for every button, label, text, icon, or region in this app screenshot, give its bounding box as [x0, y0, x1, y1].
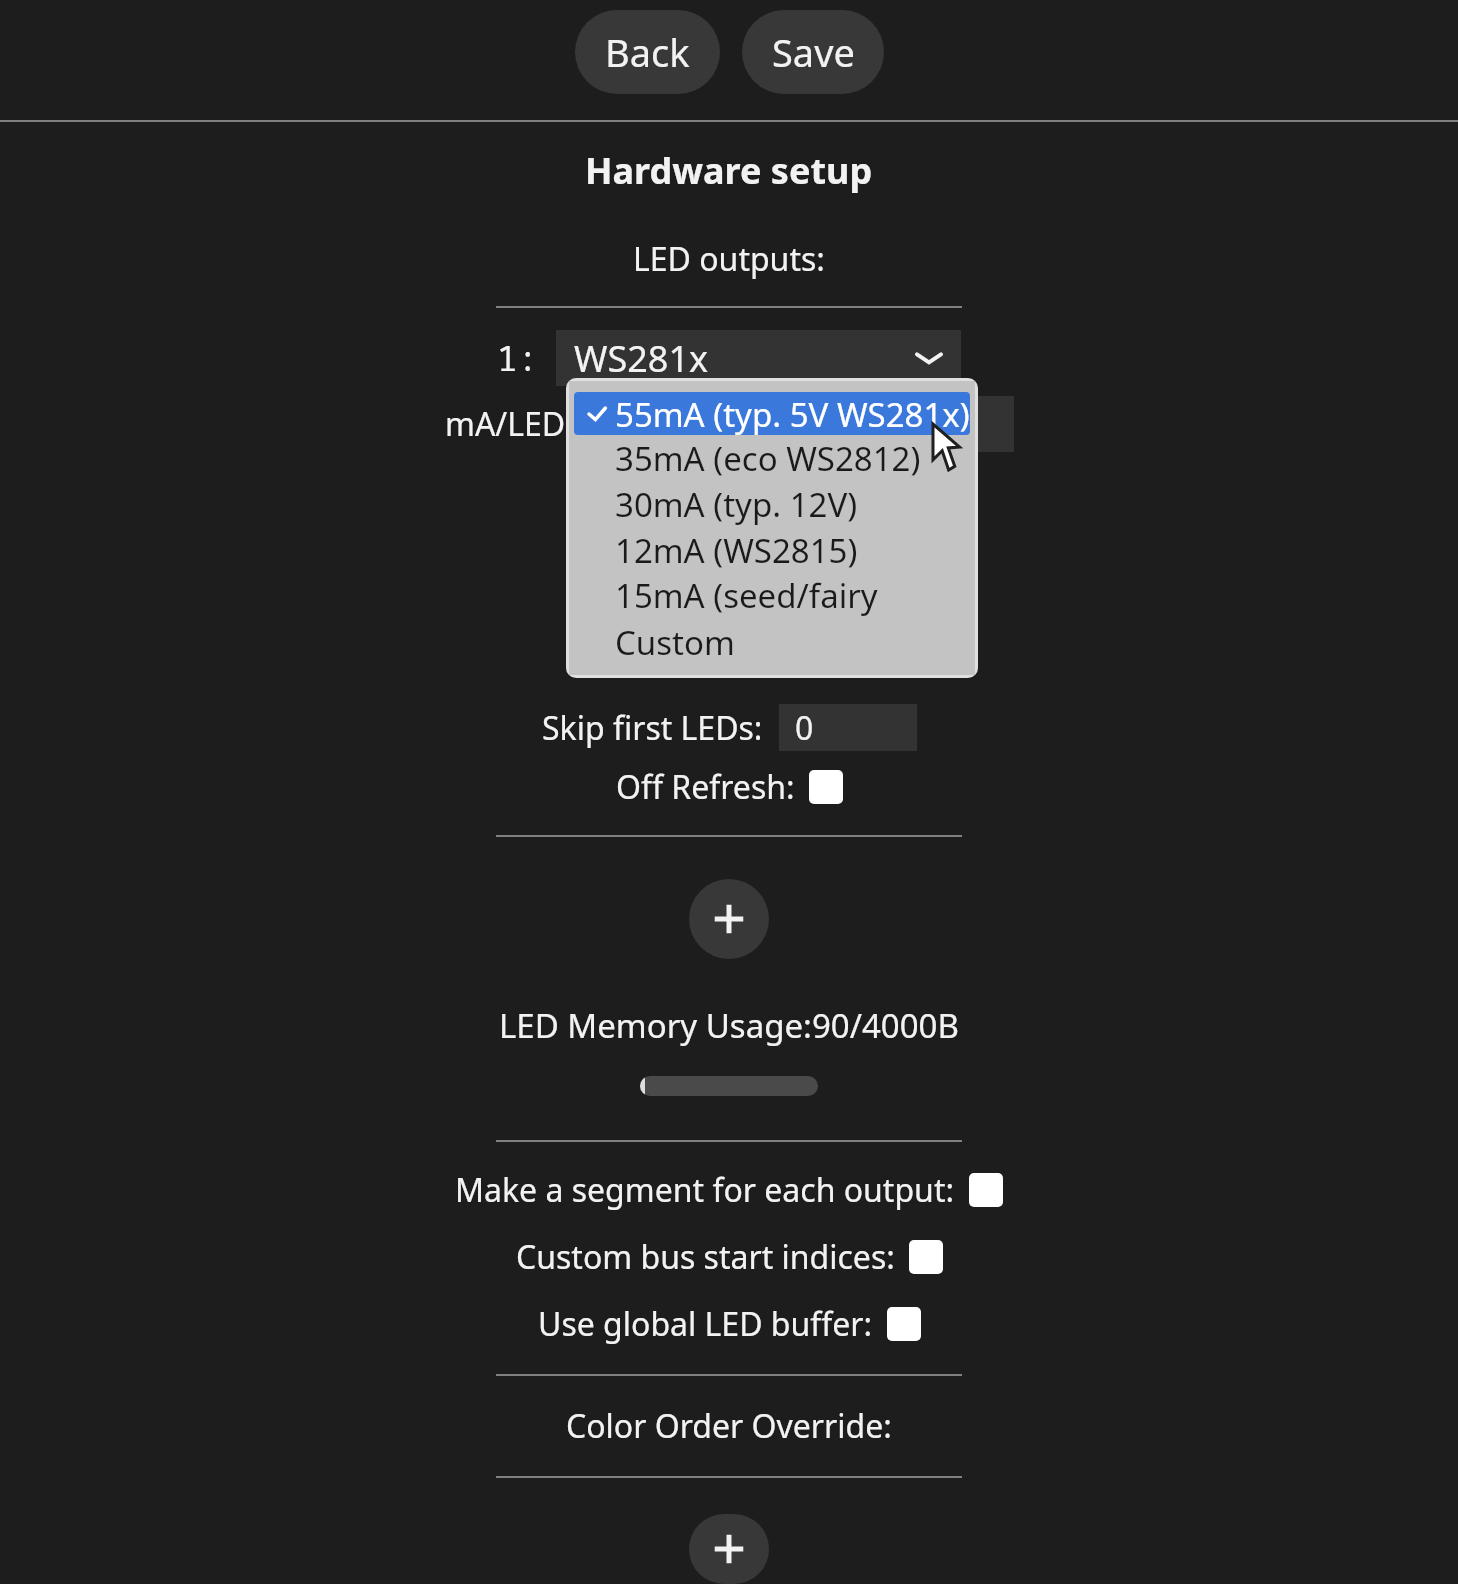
staticText: 35mA (eco WS2812) [615, 436, 921, 481]
button[interactable]: Add [689, 1514, 769, 1584]
staticText: 55mA (typ. 5V WS281x) [615, 392, 970, 435]
staticText: LED outputs: [633, 237, 825, 281]
staticText: Custom [615, 620, 735, 665]
button[interactable]: 35mA (eco WS2812) [569, 435, 975, 481]
button[interactable]: Toggle [809, 770, 843, 804]
staticText: Hardware setup [585, 146, 873, 195]
button[interactable]: 12mA (WS2815) [569, 527, 975, 573]
button[interactable]: Toggle [969, 1173, 1003, 1207]
staticText: Use global LED buffer: [538, 1302, 873, 1346]
staticText: mA/LED: [445, 402, 574, 446]
staticText: Skip first LEDs: [542, 706, 763, 750]
staticText: Off Refresh: [616, 765, 795, 809]
button[interactable]: 15mA (seed/fairy pixels) [569, 573, 975, 619]
staticText: 15mA (seed/fairy pixels) [615, 573, 975, 619]
button[interactable]: 0 [779, 704, 917, 751]
staticText: Custom bus start indices: [516, 1235, 895, 1279]
button[interactable]: WS281x [556, 330, 961, 386]
staticText: 0 [795, 706, 814, 750]
staticText: Start: [609, 515, 695, 561]
button[interactable]: Custom [569, 619, 975, 665]
button[interactable]: Back [575, 10, 720, 94]
button[interactable]: Save [742, 10, 884, 94]
staticText: Make a segment for each output: [455, 1168, 955, 1212]
staticText: 1: [497, 335, 538, 381]
staticText: WS281x [574, 334, 709, 383]
staticText: LED Memory Usage:90/4000B [499, 1003, 959, 1048]
staticText: Color Order Override: [566, 1404, 892, 1448]
button[interactable]: Toggle [887, 1307, 921, 1341]
staticText: 12mA (WS2815) [615, 528, 858, 573]
button[interactable]: 30mA (typ. 12V) [569, 481, 975, 527]
button[interactable]: 55mA (typ. 5V WS281x) [574, 392, 970, 435]
button[interactable]: Toggle [909, 1240, 943, 1274]
staticText: Save [772, 26, 855, 78]
staticText: 30mA (typ. 12V) [615, 482, 858, 527]
button[interactable]: Add [689, 879, 769, 959]
staticText: Back [605, 26, 690, 78]
staticText: Reve [693, 636, 765, 680]
